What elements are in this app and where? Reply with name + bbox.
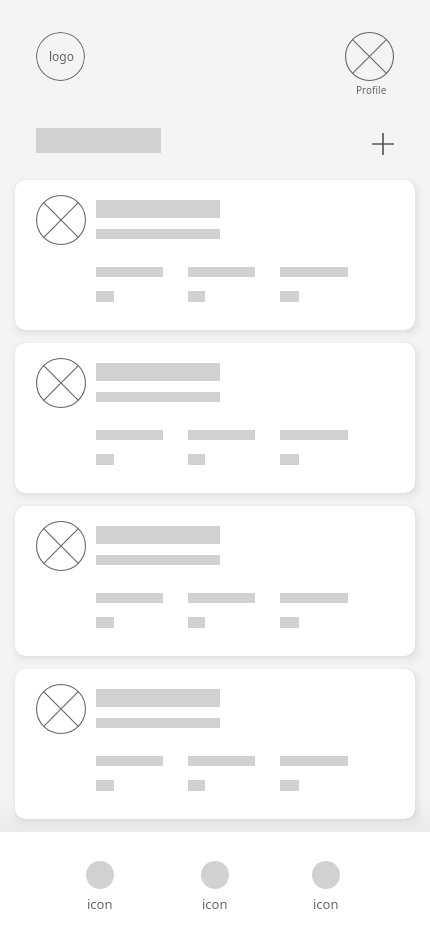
button[interactable] [15,343,415,493]
staticText: logo [49,48,74,64]
button[interactable] [15,180,415,330]
staticText: icon [313,895,339,913]
button[interactable] [15,506,415,656]
staticText: icon [87,895,113,913]
button[interactable] [15,669,415,819]
button[interactable]: Profile [333,32,406,97]
button[interactable]: logo [36,32,85,81]
staticText: icon [202,895,228,913]
button[interactable]: Search [171,849,259,921]
button[interactable]: Home [56,849,144,921]
button[interactable]: Add [365,126,401,162]
staticText: Profile [356,83,387,97]
button[interactable]: Library [282,849,370,921]
